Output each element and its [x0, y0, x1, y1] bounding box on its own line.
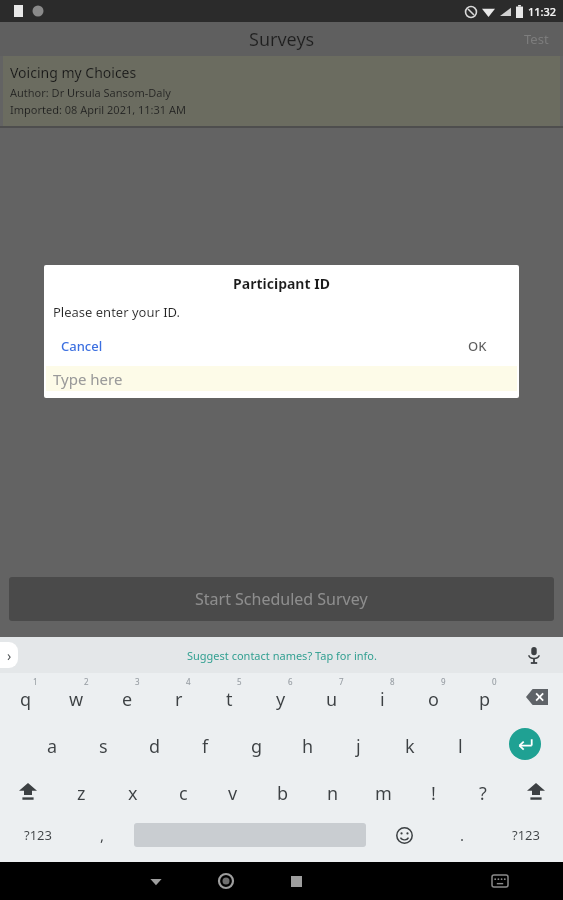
button[interactable]: h: [282, 720, 333, 767]
button[interactable]: z: [56, 767, 107, 814]
button[interactable]: Emoji: [372, 814, 436, 856]
button[interactable]: m: [358, 767, 408, 814]
button[interactable]: Enter: [486, 720, 563, 767]
button[interactable]: Recents: [261, 862, 331, 900]
staticText: Author: Dr Ursula Sansom-Daly: [10, 85, 171, 100]
button[interactable]: ?123: [0, 814, 76, 856]
staticText: ,: [100, 825, 105, 845]
staticText: z: [77, 781, 86, 806]
button[interactable]: 7: [306, 673, 357, 720]
button[interactable]: 9: [408, 673, 459, 720]
staticText: k: [405, 734, 415, 759]
button[interactable]: Voicing my Choices: [3, 56, 560, 126]
staticText: b: [277, 781, 289, 806]
button[interactable]: x: [107, 767, 158, 814]
staticText: h: [302, 734, 314, 759]
button[interactable]: Cancel: [44, 333, 120, 359]
button[interactable]: g: [231, 720, 282, 767]
staticText: p: [479, 687, 491, 712]
button[interactable]: a: [27, 720, 78, 767]
button[interactable]: d: [129, 720, 180, 767]
button[interactable]: c: [158, 767, 208, 814]
staticText: n: [327, 781, 339, 806]
staticText: j: [356, 734, 361, 759]
button[interactable]: ?123: [488, 814, 563, 856]
staticText: 6: [288, 676, 293, 687]
staticText: c: [179, 781, 188, 806]
staticText: 2: [84, 676, 89, 687]
staticText: 5: [237, 676, 242, 687]
button[interactable]: k: [384, 720, 435, 767]
staticText: Start Scheduled Survey: [195, 588, 368, 610]
button[interactable]: b: [258, 767, 308, 814]
button[interactable]: Back: [121, 862, 191, 900]
staticText: Imported: 08 April 2021, 11:31 AM: [10, 102, 186, 117]
staticText: ›: [7, 646, 12, 665]
staticText: ?: [479, 781, 487, 806]
staticText: e: [122, 687, 133, 712]
button[interactable]: Type here: [46, 366, 517, 391]
staticText: 9: [441, 676, 446, 687]
staticText: 3: [135, 676, 140, 687]
button[interactable]: 8: [357, 673, 408, 720]
button[interactable]: 5: [204, 673, 255, 720]
staticText: 0: [492, 676, 497, 687]
staticText: Cancel: [61, 337, 103, 355]
button[interactable]: Test: [510, 24, 563, 54]
button[interactable]: s: [78, 720, 129, 767]
staticText: x: [128, 781, 138, 806]
staticText: a: [47, 734, 58, 759]
button[interactable]: 3: [102, 673, 153, 720]
button[interactable]: Period: [436, 814, 488, 856]
button[interactable]: !: [408, 767, 458, 814]
button[interactable]: 4: [153, 673, 204, 720]
staticText: i: [380, 687, 385, 712]
staticText: .: [460, 825, 465, 845]
staticText: 7: [339, 676, 344, 687]
button[interactable]: Start Scheduled Survey: [9, 577, 554, 621]
button[interactable]: Expand suggestions: [0, 642, 18, 668]
staticText: ?123: [24, 826, 52, 844]
staticText: 4: [186, 676, 191, 687]
staticText: Please enter your ID.: [53, 303, 181, 321]
button[interactable]: Voice input: [521, 642, 547, 668]
button[interactable]: 0: [459, 673, 510, 720]
button[interactable]: f: [180, 720, 231, 767]
button[interactable]: l: [435, 720, 486, 767]
staticText: m: [375, 781, 392, 806]
button[interactable]: Shift: [0, 768, 56, 813]
button[interactable]: n: [308, 767, 358, 814]
staticText: s: [99, 734, 108, 759]
staticText: Participant ID: [44, 274, 519, 293]
staticText: Surveys: [249, 27, 315, 52]
staticText: u: [326, 687, 338, 712]
button[interactable]: Backspace: [510, 673, 563, 720]
button[interactable]: v: [208, 767, 258, 814]
button[interactable]: Suggest contact names? Tap for info.: [187, 648, 377, 663]
button[interactable]: j: [333, 720, 384, 767]
button[interactable]: Comma: [76, 814, 128, 856]
staticText: d: [149, 734, 161, 759]
button[interactable]: OK: [436, 333, 519, 359]
staticText: ?123: [512, 826, 540, 844]
staticText: f: [202, 734, 209, 759]
button[interactable]: 6: [255, 673, 306, 720]
staticText: Voicing my Choices: [10, 63, 137, 82]
staticText: v: [228, 781, 238, 806]
button[interactable]: ?: [458, 767, 508, 814]
staticText: 8: [390, 676, 395, 687]
button[interactable]: Home: [191, 862, 261, 900]
button[interactable]: 2: [51, 673, 102, 720]
button[interactable]: Shift: [508, 768, 563, 813]
staticText: g: [251, 734, 263, 759]
staticText: q: [20, 687, 32, 712]
button[interactable]: 1: [0, 673, 51, 720]
staticText: t: [226, 687, 233, 712]
staticText: y: [276, 687, 286, 712]
button[interactable]: Switch keyboard: [465, 862, 535, 900]
staticText: r: [175, 687, 183, 712]
staticText: Type here: [53, 369, 123, 389]
staticText: o: [428, 687, 439, 712]
staticText: OK: [468, 337, 487, 355]
